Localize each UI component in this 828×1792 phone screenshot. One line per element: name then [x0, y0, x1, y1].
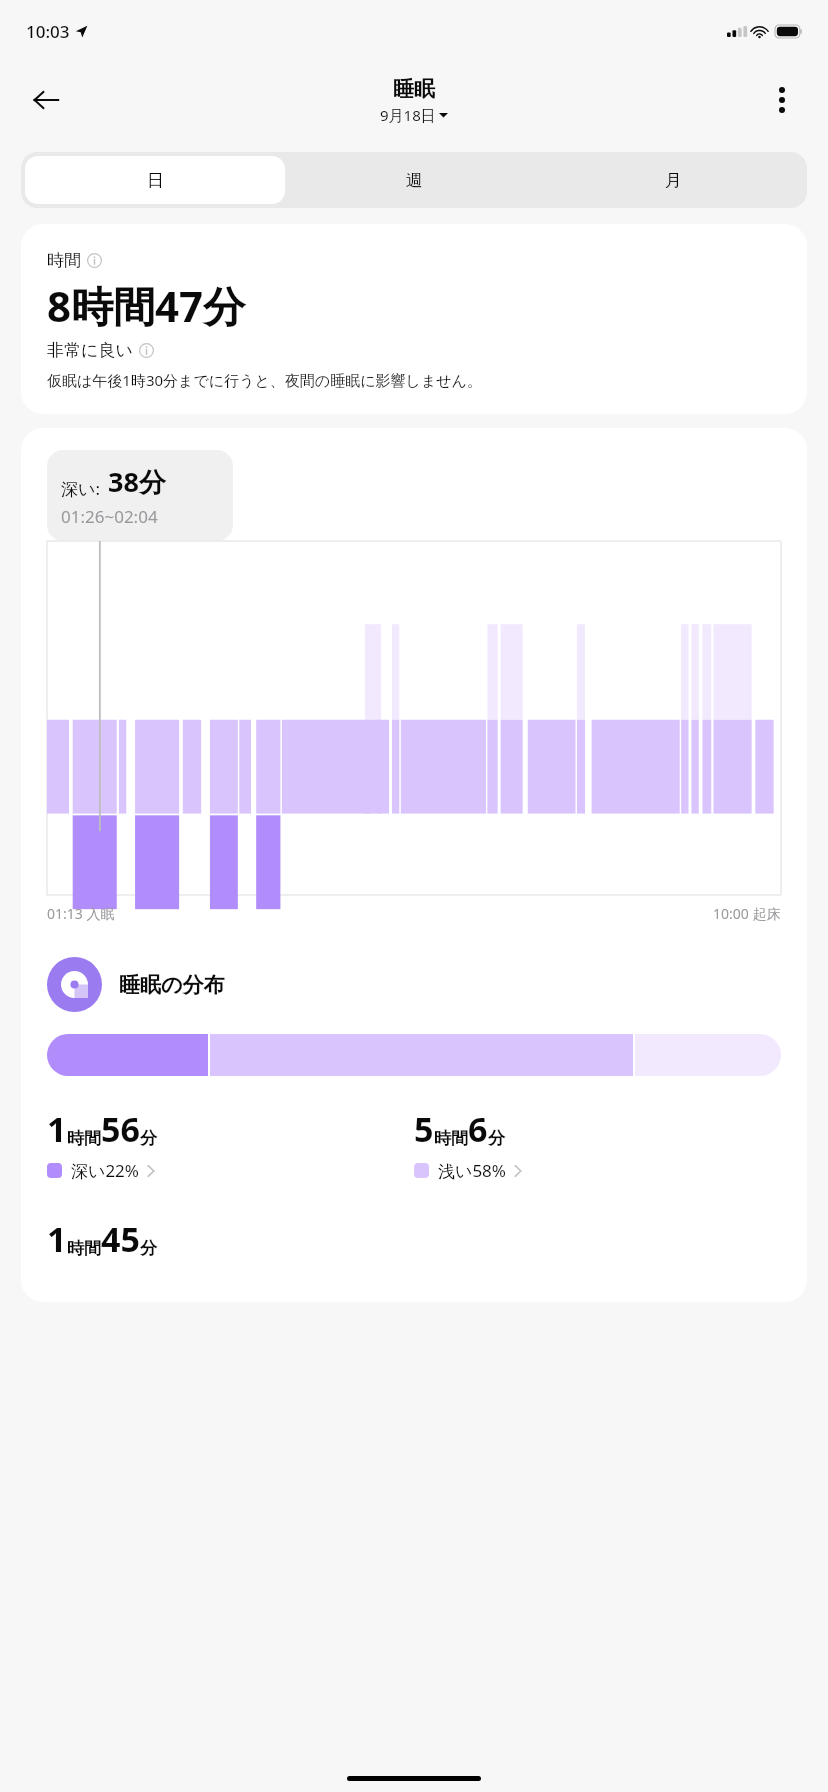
button[interactable]: More options — [756, 74, 808, 126]
staticText: 月 — [665, 170, 682, 191]
staticText: 浅い58% — [438, 1159, 506, 1182]
button[interactable]: 1 — [47, 1106, 414, 1182]
staticText: 分 — [140, 1238, 157, 1259]
staticText: 時間 — [67, 1238, 101, 1259]
button[interactable]: 睡眠の分布 — [47, 957, 225, 1012]
staticText: 睡眠 — [393, 76, 435, 102]
staticText: 時間 — [67, 1128, 101, 1149]
button[interactable]: 週 — [285, 156, 544, 204]
staticText: 6 — [468, 1106, 488, 1152]
staticText: 1 — [47, 1216, 67, 1262]
staticText: 深い22% — [71, 1159, 139, 1182]
staticText: 睡眠の分布 — [119, 972, 225, 998]
button[interactable]: 5 — [414, 1106, 781, 1182]
button[interactable]: Back — [20, 74, 72, 126]
staticText: 分 — [488, 1128, 505, 1149]
staticText: 10:03 — [26, 20, 70, 43]
staticText: 01:26~02:04 — [61, 505, 158, 528]
staticText: 深い: — [61, 477, 100, 500]
staticText: 仮眠は午後1時30分までに行うと、夜間の睡眠に影響しません。 — [47, 370, 482, 390]
button[interactable]: 日 — [25, 156, 285, 204]
staticText: 38分 — [108, 463, 166, 500]
staticText: 分 — [140, 1128, 157, 1149]
staticText: 時間 — [434, 1128, 468, 1149]
staticText: 5 — [414, 1106, 434, 1152]
staticText: 時間 — [47, 250, 81, 271]
staticText: 週 — [406, 170, 423, 191]
staticText: 45 — [101, 1216, 140, 1262]
button[interactable]: 時間 — [21, 224, 807, 414]
button[interactable]: 月 — [544, 156, 803, 204]
staticText: 8時間47分 — [47, 277, 246, 334]
button[interactable]: 9月18日 — [380, 105, 448, 125]
staticText: 01:13 入眠 — [47, 904, 115, 923]
staticText: 非常に良い — [47, 340, 133, 361]
staticText: 日 — [147, 170, 164, 191]
staticText: 56 — [101, 1106, 140, 1152]
staticText: 1 — [47, 1106, 67, 1152]
staticText: 10:00 起床 — [713, 904, 781, 923]
staticText: 9月18日 — [380, 105, 436, 125]
